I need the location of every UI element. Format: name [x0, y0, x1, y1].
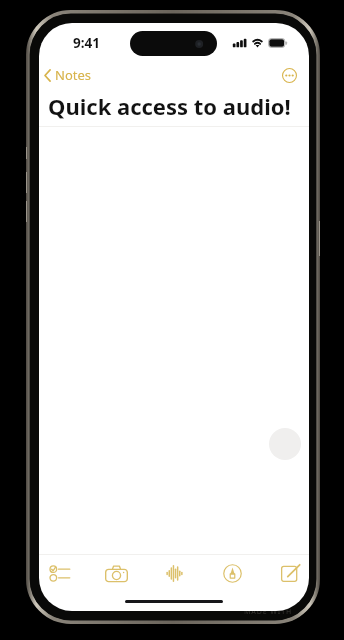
button[interactable]: New note [273, 556, 307, 590]
button[interactable]: Markup [215, 556, 249, 590]
staticText: Quick access to audio! [48, 91, 291, 121]
staticText: MADE WITH [244, 607, 293, 617]
button[interactable]: Audio recording [157, 556, 191, 590]
button[interactable]: More options [278, 64, 301, 87]
staticText: 9:41 [73, 34, 100, 52]
button[interactable]: Checklist [41, 556, 75, 590]
button[interactable]: Notes [40, 62, 95, 88]
button[interactable]: Camera [99, 556, 133, 590]
staticText: Notes [55, 66, 91, 84]
